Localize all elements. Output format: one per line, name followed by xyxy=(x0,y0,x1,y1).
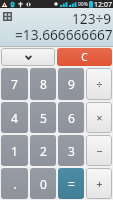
staticText: 9 xyxy=(68,76,75,92)
button[interactable]: 5 xyxy=(30,102,56,133)
staticText: − xyxy=(96,143,103,158)
staticText: 0 xyxy=(40,176,47,192)
staticText: ÷ xyxy=(96,77,103,92)
button[interactable]: 9 xyxy=(58,68,84,100)
button[interactable]: C xyxy=(57,48,112,66)
staticText: . xyxy=(13,176,17,192)
button[interactable]: . xyxy=(1,168,28,199)
staticText: 123÷9 xyxy=(72,9,112,28)
button[interactable]: + xyxy=(86,168,112,199)
button[interactable]: 8 xyxy=(30,68,56,100)
button[interactable]: 1 xyxy=(1,135,28,166)
staticText: 7 xyxy=(11,76,18,92)
button[interactable]: × xyxy=(86,102,112,133)
staticText: =13.666666667 xyxy=(15,25,113,44)
staticText: 12:07 xyxy=(94,0,112,8)
staticText: 90% xyxy=(78,1,88,8)
staticText: × xyxy=(96,110,103,125)
button[interactable]: ÷ xyxy=(86,68,112,100)
staticText: 8 xyxy=(40,76,47,92)
button[interactable]: = xyxy=(58,168,84,199)
staticText: 1 xyxy=(11,143,18,159)
staticText: 3 xyxy=(68,143,75,159)
staticText: = xyxy=(68,176,75,192)
button[interactable]: − xyxy=(86,135,112,166)
staticText: 2 xyxy=(40,143,47,159)
staticText: + xyxy=(96,176,103,191)
staticText: 6 xyxy=(68,110,75,126)
staticText: 4 xyxy=(11,110,18,126)
button[interactable]: 6 xyxy=(58,102,84,133)
staticText: C xyxy=(81,50,88,64)
button[interactable]: 2 xyxy=(30,135,56,166)
button[interactable]: 7 xyxy=(1,68,28,100)
button[interactable]: 3 xyxy=(58,135,84,166)
button[interactable]: 0 xyxy=(30,168,56,199)
button[interactable]: 4 xyxy=(1,102,28,133)
button[interactable]: Show history xyxy=(1,48,55,66)
staticText: 5 xyxy=(40,110,47,126)
